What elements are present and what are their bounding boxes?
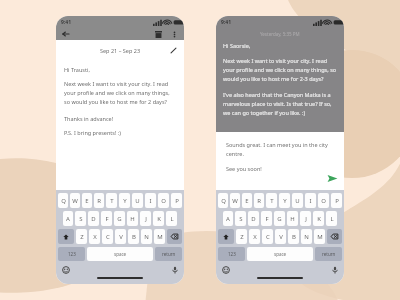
staticText: 123 <box>68 251 76 257</box>
button[interactable]: A <box>63 211 73 226</box>
staticText: D <box>91 215 96 223</box>
button[interactable]: S <box>235 211 246 226</box>
staticText: S <box>239 215 243 223</box>
button[interactable]: W <box>230 193 240 208</box>
button[interactable]: Q <box>218 193 228 208</box>
button[interactable]: L <box>166 211 177 226</box>
button[interactable]: V <box>115 229 126 244</box>
button[interactable]: T <box>106 193 117 208</box>
staticText: Hi Trausti, <box>64 66 90 73</box>
button[interactable]: R <box>94 193 104 208</box>
button[interactable]: M <box>314 229 325 244</box>
button[interactable]: space <box>87 247 153 261</box>
staticText: W <box>232 197 238 205</box>
button[interactable]: W <box>70 193 80 208</box>
staticText: Next week I want to visit your city. I r… <box>64 80 176 106</box>
staticText: return <box>162 251 176 257</box>
button[interactable]: Dictate <box>330 265 339 274</box>
button[interactable]: Dictate <box>170 265 179 274</box>
button[interactable]: G <box>114 211 125 226</box>
button[interactable]: T <box>266 193 277 208</box>
button[interactable]: Key <box>58 229 74 244</box>
staticText: Y <box>283 197 287 205</box>
button[interactable]: E <box>82 193 92 208</box>
staticText: Q <box>61 197 66 205</box>
button[interactable]: E <box>242 193 252 208</box>
button[interactable]: N <box>141 229 152 244</box>
button[interactable]: X <box>249 229 260 244</box>
staticText: P <box>335 197 339 205</box>
button[interactable]: K <box>313 211 324 226</box>
staticText: U <box>135 197 140 205</box>
button[interactable]: X <box>89 229 100 244</box>
button[interactable]: M <box>154 229 165 244</box>
button[interactable]: Y <box>119 193 130 208</box>
button[interactable]: 123 <box>58 247 85 261</box>
button[interactable]: U <box>132 193 143 208</box>
button[interactable]: L <box>326 211 337 226</box>
button[interactable]: Edit <box>169 46 178 55</box>
button[interactable]: A <box>223 211 233 226</box>
button[interactable]: Key <box>218 229 234 244</box>
button[interactable]: C <box>102 229 113 244</box>
button[interactable]: More options <box>169 29 179 39</box>
button[interactable]: S <box>75 211 86 226</box>
button[interactable]: Send <box>326 172 338 184</box>
staticText: F <box>105 215 109 223</box>
button[interactable]: Z <box>236 229 247 244</box>
staticText: C <box>266 233 270 241</box>
button[interactable]: Key <box>327 229 342 244</box>
staticText: I <box>149 197 152 205</box>
button[interactable]: O <box>318 193 329 208</box>
button[interactable]: I <box>145 193 156 208</box>
button[interactable]: Back <box>61 29 71 39</box>
button[interactable]: D <box>88 211 99 226</box>
staticText: Thanks in advance! <box>64 115 114 122</box>
button[interactable]: Key <box>167 229 182 244</box>
staticText: Hi Saorsie, <box>223 42 251 49</box>
button[interactable]: O <box>158 193 169 208</box>
button[interactable]: G <box>274 211 285 226</box>
button[interactable]: J <box>140 211 151 226</box>
button[interactable]: J <box>300 211 311 226</box>
staticText: K <box>157 215 161 223</box>
button[interactable]: Q <box>58 193 68 208</box>
staticText: J <box>145 215 147 223</box>
staticText: G <box>277 215 282 223</box>
button[interactable]: Emoji <box>61 265 70 274</box>
button[interactable]: Y <box>279 193 290 208</box>
staticText: N <box>144 233 149 241</box>
button[interactable]: D <box>248 211 259 226</box>
button[interactable]: R <box>254 193 264 208</box>
staticText: 123 <box>228 251 236 257</box>
button[interactable]: I <box>305 193 316 208</box>
button[interactable]: K <box>153 211 164 226</box>
button[interactable]: Emoji <box>221 265 230 274</box>
staticText: T <box>270 197 274 205</box>
button[interactable]: U <box>292 193 303 208</box>
button[interactable]: F <box>101 211 112 226</box>
staticText: See you soon! <box>226 165 262 172</box>
staticText: space <box>114 251 127 257</box>
button[interactable]: return <box>155 247 182 261</box>
button[interactable]: B <box>128 229 139 244</box>
staticText: V <box>119 233 123 241</box>
button[interactable]: H <box>287 211 298 226</box>
button[interactable]: H <box>127 211 138 226</box>
button[interactable]: Archive <box>153 29 163 39</box>
button[interactable]: P <box>331 193 342 208</box>
button[interactable]: P <box>171 193 182 208</box>
button[interactable]: return <box>315 247 342 261</box>
button[interactable]: space <box>247 247 313 261</box>
button[interactable]: B <box>288 229 299 244</box>
button[interactable]: N <box>301 229 312 244</box>
staticText: O <box>161 197 166 205</box>
button[interactable]: V <box>275 229 286 244</box>
button[interactable]: Z <box>76 229 87 244</box>
staticText: Sounds great. I can meet you in the city… <box>226 141 336 158</box>
button[interactable]: 123 <box>218 247 245 261</box>
staticText: B <box>292 233 296 241</box>
button[interactable]: C <box>262 229 273 244</box>
staticText: H <box>130 215 135 223</box>
button[interactable]: F <box>261 211 272 226</box>
